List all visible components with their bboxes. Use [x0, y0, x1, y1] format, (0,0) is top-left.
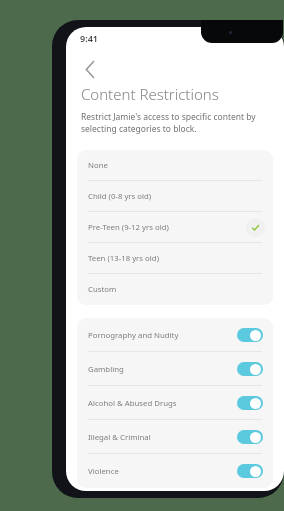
- button[interactable]: None: [77, 150, 273, 181]
- button[interactable]: Illegal & Criminal: [77, 420, 273, 454]
- button[interactable]: Pre-Teen (9-12 yrs old): [77, 212, 273, 243]
- staticText: Teen (13-18 yrs old): [88, 253, 159, 264]
- button[interactable]: Toggle Gambling: [237, 362, 263, 376]
- button[interactable]: Toggle Alcohol & Abused Drugs: [237, 396, 263, 410]
- staticText: Alcohol & Abused Drugs: [88, 398, 177, 409]
- button[interactable]: Gambling: [77, 352, 273, 386]
- staticText: Illegal & Criminal: [88, 432, 151, 443]
- button[interactable]: Teen (13-18 yrs old): [77, 243, 273, 274]
- button[interactable]: Pornography and Nudity: [77, 318, 273, 352]
- staticText: None: [88, 160, 108, 171]
- button[interactable]: Custom: [77, 274, 273, 305]
- staticText: Pre-Teen (9-12 yrs old): [88, 222, 169, 233]
- button[interactable]: Alcohol & Abused Drugs: [77, 386, 273, 420]
- button[interactable]: Toggle Illegal & Criminal: [237, 430, 263, 444]
- button[interactable]: Toggle Violence: [237, 464, 263, 478]
- button[interactable]: Violence: [77, 454, 273, 488]
- button[interactable]: Child (0-8 yrs old): [77, 181, 273, 212]
- staticText: Restrict Jamie's access to specific cont…: [81, 111, 256, 135]
- staticText: Pornography and Nudity: [88, 330, 179, 341]
- staticText: Custom: [88, 284, 117, 295]
- button[interactable]: Toggle Pornography and Nudity: [237, 328, 263, 342]
- button[interactable]: Back: [75, 54, 105, 84]
- staticText: Content Restrictions: [81, 84, 219, 104]
- staticText: Child (0-8 yrs old): [88, 191, 152, 202]
- staticText: Gambling: [88, 364, 124, 375]
- staticText: 9:41: [80, 32, 98, 44]
- staticText: Violence: [88, 466, 119, 477]
